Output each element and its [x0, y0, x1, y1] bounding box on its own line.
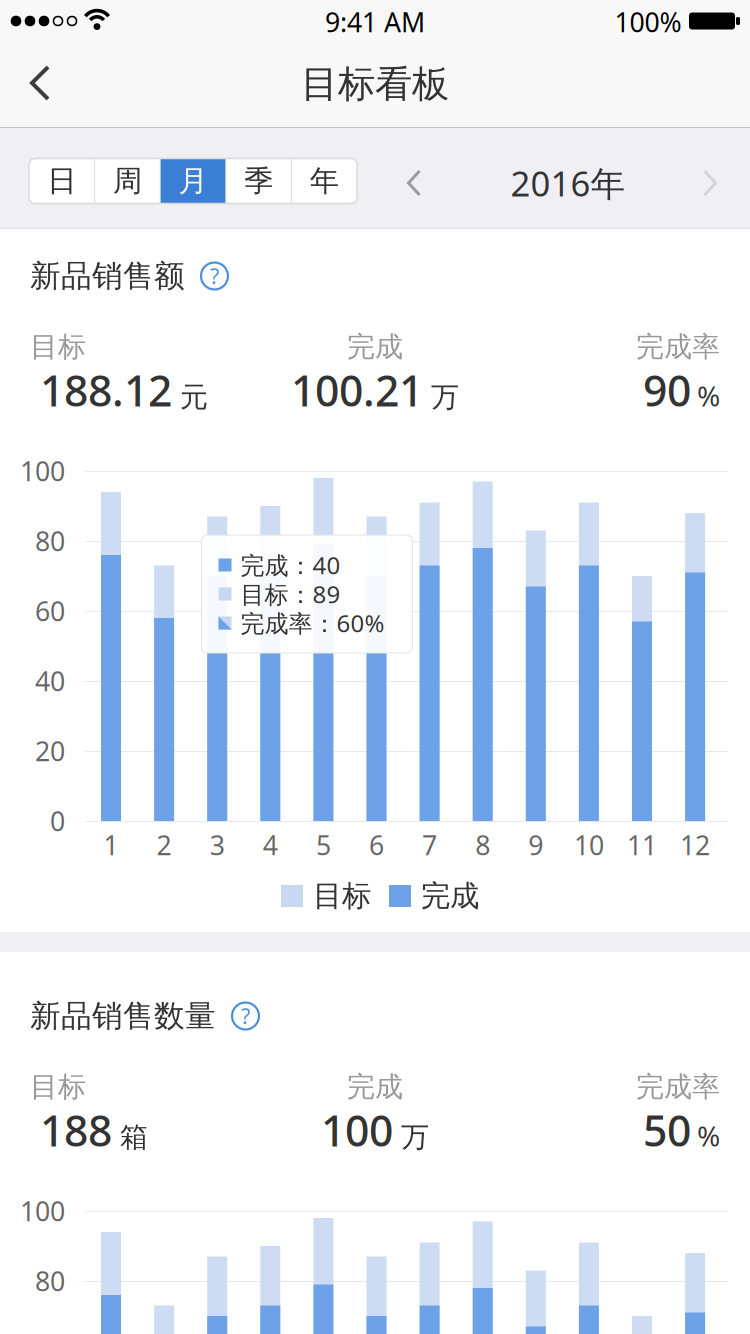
staticText: ?: [241, 1002, 250, 1030]
staticText: %: [697, 1117, 720, 1154]
staticText: 100%: [614, 4, 681, 40]
staticText: 完成：40: [240, 549, 340, 581]
staticText: 万: [401, 1120, 429, 1154]
staticText: 11: [627, 827, 657, 863]
staticText: 周: [113, 163, 142, 199]
button[interactable]: 年: [291, 158, 357, 203]
staticText: 目标: [30, 330, 86, 364]
staticText: 188.12: [40, 362, 172, 418]
staticText: 10: [574, 827, 604, 863]
staticText: 完成率：60%: [240, 607, 384, 639]
staticText: 90: [643, 362, 691, 418]
staticText: 年: [310, 163, 339, 199]
staticText: 80: [35, 523, 65, 559]
staticText: 2016年: [510, 160, 625, 206]
staticText: 80: [35, 1263, 65, 1299]
button[interactable]: Help: [230, 1000, 261, 1031]
staticText: 月: [178, 163, 207, 199]
staticText: 季: [244, 163, 273, 199]
button[interactable]: 日: [29, 158, 95, 203]
button[interactable]: 月: [160, 158, 226, 203]
staticText: 完成: [347, 1070, 403, 1104]
staticText: 4: [263, 827, 278, 863]
staticText: 目标看板: [301, 61, 449, 107]
staticText: %: [697, 377, 720, 414]
staticText: 完成率: [636, 330, 720, 364]
staticText: 新品销售数量: [30, 997, 216, 1035]
staticText: 188: [40, 1102, 112, 1158]
staticText: 3: [210, 827, 225, 863]
staticText: 2: [157, 827, 172, 863]
staticText: 7: [422, 827, 437, 863]
staticText: 新品销售额: [30, 257, 185, 295]
staticText: 9: [528, 827, 543, 863]
staticText: 60: [35, 593, 65, 629]
staticText: 12: [680, 827, 710, 863]
staticText: 完成率: [636, 1070, 720, 1104]
staticText: 0: [50, 803, 65, 839]
staticText: 万: [431, 380, 459, 414]
button[interactable]: Help: [199, 260, 230, 291]
button[interactable]: 周: [95, 158, 160, 203]
staticText: 8: [475, 827, 490, 863]
staticText: 100: [20, 1193, 65, 1229]
staticText: 目标：89: [240, 578, 340, 610]
staticText: 5: [316, 827, 331, 863]
button[interactable]: Previous year: [394, 161, 434, 205]
staticText: 6: [369, 827, 384, 863]
staticText: ?: [210, 262, 219, 290]
staticText: 完成: [421, 878, 479, 914]
staticText: 完成: [347, 330, 403, 364]
staticText: 箱: [120, 1120, 148, 1154]
staticText: 100: [20, 453, 65, 489]
staticText: 目标: [30, 1070, 86, 1104]
button[interactable]: Back: [12, 51, 68, 115]
staticText: 9:41 AM: [325, 4, 425, 40]
button[interactable]: 季: [226, 158, 291, 203]
staticText: 元: [180, 380, 208, 414]
staticText: 40: [35, 663, 65, 699]
staticText: 20: [35, 733, 65, 769]
staticText: 50: [643, 1102, 691, 1158]
button[interactable]: Next year: [690, 161, 730, 205]
staticText: 1: [103, 827, 118, 863]
staticText: 目标: [313, 878, 371, 914]
staticText: 日: [47, 163, 76, 199]
staticText: 100.21: [291, 362, 423, 418]
staticText: 100: [321, 1102, 393, 1158]
